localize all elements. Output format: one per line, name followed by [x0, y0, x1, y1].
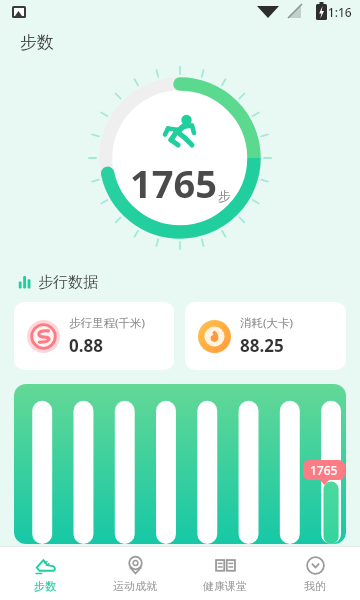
- other: Calories: [198, 320, 231, 353]
- staticText: 88.25: [240, 334, 284, 357]
- staticText: 11:16: [321, 4, 352, 20]
- staticText: 步数: [34, 579, 56, 593]
- button[interactable]: 我的: [270, 547, 360, 600]
- staticText: 1765: [310, 462, 338, 478]
- staticText: 消耗(大卡): [240, 315, 293, 331]
- button[interactable]: 运动成就: [90, 547, 180, 600]
- staticText: 1765: [130, 157, 217, 209]
- staticText: 0.88: [69, 334, 103, 357]
- staticText: 步: [218, 188, 231, 204]
- staticText: 步行里程(千米): [69, 315, 145, 331]
- other: Distance: [27, 320, 60, 353]
- staticText: 步数: [20, 32, 54, 53]
- staticText: 运动成就: [113, 579, 157, 593]
- button[interactable]: 健康课堂: [180, 547, 270, 600]
- button[interactable]: 步数: [0, 547, 90, 600]
- button[interactable]: Calories: [185, 302, 346, 370]
- staticText: 步行数据: [38, 273, 98, 292]
- staticText: 健康课堂: [203, 579, 247, 593]
- staticText: 我的: [304, 579, 326, 593]
- button[interactable]: 1765: [14, 384, 346, 544]
- button[interactable]: Distance: [14, 302, 174, 370]
